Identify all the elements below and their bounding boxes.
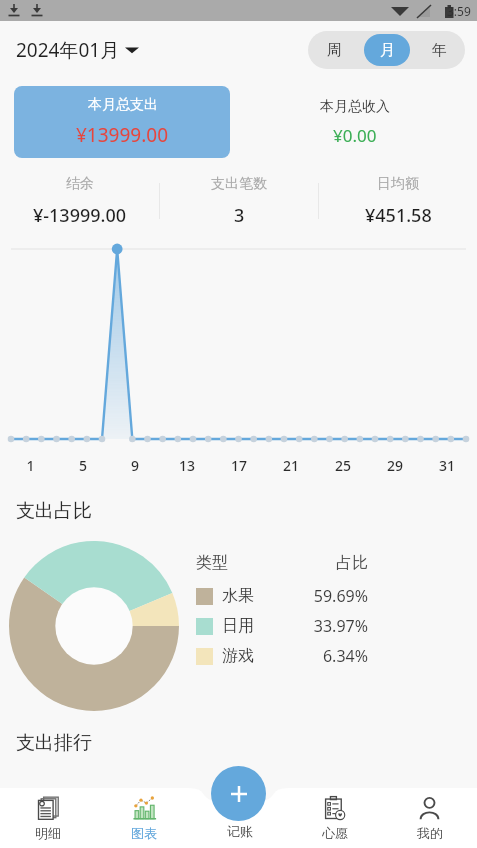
staticText: 年 [432, 41, 447, 60]
staticText: 占比 [292, 553, 368, 573]
staticText: 29 [369, 456, 421, 475]
staticText: 21 [265, 456, 317, 475]
staticText: 59.69% [292, 585, 368, 607]
staticText: ¥451.58 [365, 203, 432, 228]
staticText: 本月总支出 [88, 96, 158, 114]
staticText: 13 [161, 456, 213, 475]
staticText: 支出占比 [16, 499, 92, 523]
button[interactable]: 支出笔数 [160, 175, 318, 228]
button[interactable]: 游戏 [196, 645, 477, 667]
button[interactable]: 日用 [196, 615, 477, 637]
staticText: ¥13999.00 [76, 122, 169, 148]
staticText: 2024年01月 [16, 37, 120, 63]
staticText: 结余 [66, 175, 94, 193]
button[interactable]: 明细 [0, 788, 96, 848]
button[interactable]: 记账 新增记录 [211, 766, 266, 821]
staticText: 支出笔数 [211, 175, 267, 193]
staticText: 3:59 [447, 3, 471, 19]
button[interactable]: 本月总收入 [246, 86, 463, 158]
staticText: 17 [213, 456, 265, 475]
button[interactable]: 图表 [96, 788, 192, 848]
button[interactable]: 日均额 [319, 175, 477, 228]
button[interactable]: 2024年01月 [16, 37, 139, 63]
staticText: 游戏 [222, 646, 254, 666]
button[interactable]: 记账 [192, 788, 287, 848]
staticText: 33.97% [292, 615, 368, 637]
staticText: 25 [317, 456, 369, 475]
staticText: 1 [4, 456, 57, 475]
staticText: 周 [327, 41, 342, 60]
button[interactable]: 我的 [382, 788, 477, 848]
staticText: 本月总收入 [320, 98, 390, 116]
staticText: 明细 [35, 825, 61, 841]
staticText: 3 [234, 203, 245, 228]
button[interactable]: 年 [416, 34, 462, 66]
staticText: 我的 [417, 825, 443, 841]
staticText: 5 [57, 456, 109, 475]
button[interactable]: 水果 [196, 585, 477, 607]
staticText: ¥0.00 [333, 124, 377, 147]
button[interactable]: 结余 [0, 175, 159, 228]
staticText: 月 [380, 41, 395, 60]
staticText: 日均额 [377, 175, 419, 193]
staticText: 图表 [131, 825, 157, 841]
staticText: 31 [421, 456, 473, 475]
staticText: 类型 [196, 553, 292, 573]
staticText: ¥-13999.00 [33, 203, 127, 228]
button[interactable]: 心愿 [287, 788, 382, 848]
button[interactable]: 本月总支出 [14, 86, 230, 158]
staticText: 日用 [222, 616, 254, 636]
staticText: 记账 [227, 823, 253, 839]
staticText: 心愿 [322, 825, 348, 841]
staticText: 6.34% [292, 645, 368, 667]
staticText: 水果 [222, 586, 254, 606]
staticText: 支出排行 [16, 731, 92, 755]
button[interactable]: 周 [311, 34, 358, 66]
button[interactable]: 月 [364, 34, 410, 66]
staticText: 9 [109, 456, 161, 475]
